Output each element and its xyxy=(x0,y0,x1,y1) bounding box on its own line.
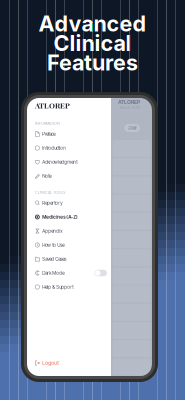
staticText: ATLOREP xyxy=(118,99,140,105)
button[interactable]: How to Use xyxy=(35,238,107,252)
staticText: Help & Support xyxy=(42,284,73,290)
staticText: Introduction xyxy=(42,145,66,151)
staticText: Medicines (A-Z) xyxy=(42,214,78,220)
staticText: Logout xyxy=(42,360,59,366)
staticText: Preface xyxy=(42,131,55,137)
button[interactable]: Introduction xyxy=(35,141,107,155)
button[interactable]: Dark Mode xyxy=(35,266,107,280)
button[interactable]: Medicines (A-Z) xyxy=(35,210,107,224)
button[interactable]: Logout xyxy=(35,357,107,369)
staticText: Acknowledgment xyxy=(42,159,77,165)
staticText: How to Use xyxy=(42,242,64,248)
button[interactable]: Acknowledgment xyxy=(35,155,107,169)
button[interactable]: Repertory xyxy=(35,196,107,210)
staticText: Appendix xyxy=(42,228,62,234)
staticText: Clinical xyxy=(53,30,131,56)
button[interactable]: Saved Cases xyxy=(35,252,107,266)
button[interactable]: Clear xyxy=(124,124,140,132)
staticText: SELECTION xyxy=(120,105,140,110)
staticText: Clear xyxy=(128,125,137,131)
button[interactable]: Preface xyxy=(35,127,107,141)
staticText: Note xyxy=(42,173,51,179)
staticText: Dark Mode xyxy=(42,270,64,276)
staticText: Saved Cases xyxy=(42,256,66,262)
button[interactable]: Note xyxy=(35,169,107,183)
staticText: Features xyxy=(47,50,138,76)
staticText: INFORMATION xyxy=(35,121,60,126)
staticText: Repertory xyxy=(42,200,62,206)
staticText: CLINICAL TOOLS xyxy=(35,190,65,195)
staticText: ATLOREP xyxy=(35,100,70,110)
staticText: Advanced xyxy=(38,11,146,37)
button[interactable]: Help & Support xyxy=(35,280,107,294)
button[interactable]: Appendix xyxy=(35,224,107,238)
